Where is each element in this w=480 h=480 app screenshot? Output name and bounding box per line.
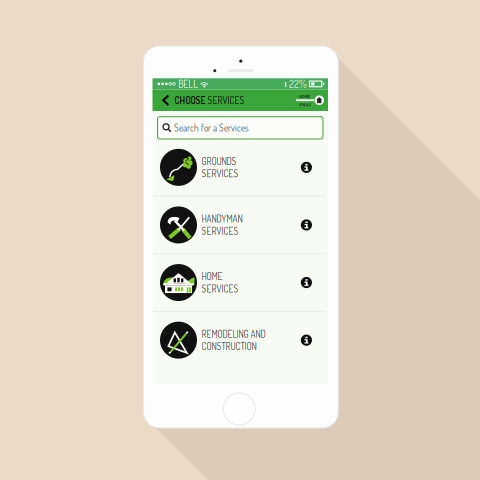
staticText: SERVICES bbox=[201, 283, 238, 295]
staticText: PROS bbox=[299, 101, 310, 107]
staticText: SERVICES bbox=[201, 168, 238, 179]
button[interactable]: HOME bbox=[152, 254, 328, 311]
staticText: CHOOSE bbox=[174, 94, 205, 106]
staticText: REMODELING AND bbox=[201, 328, 265, 340]
staticText: 22% bbox=[289, 78, 307, 90]
button[interactable]: Back bbox=[152, 89, 174, 111]
staticText: GROUNDS bbox=[201, 155, 236, 167]
staticText: CONSTRUCTION bbox=[201, 340, 256, 352]
staticText: BELL bbox=[178, 78, 198, 90]
staticText: SERVICES bbox=[205, 94, 244, 106]
staticText: HANDYMAN bbox=[201, 213, 242, 225]
button[interactable]: Home Pros bbox=[296, 89, 328, 111]
button[interactable]: HANDYMAN bbox=[152, 197, 328, 253]
staticText: HOME bbox=[299, 93, 311, 99]
staticText: SERVICES bbox=[201, 225, 238, 237]
staticText: HOME bbox=[201, 270, 222, 282]
button[interactable]: Search for a Services bbox=[158, 117, 323, 139]
button[interactable]: GROUNDS bbox=[152, 139, 328, 196]
button[interactable]: REMODELING AND bbox=[152, 312, 328, 368]
staticText: Search for a Services bbox=[174, 122, 249, 134]
